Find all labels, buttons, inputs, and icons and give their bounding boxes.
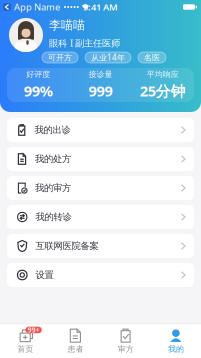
staticText: 设置 bbox=[35, 269, 53, 281]
staticText: 平均响应 bbox=[147, 69, 179, 79]
button[interactable]: 我的出诊 bbox=[7, 118, 194, 142]
staticText: 好评度 bbox=[26, 69, 50, 79]
staticText: 99% bbox=[24, 81, 53, 101]
staticText: 互联网医院备案 bbox=[35, 240, 98, 252]
staticText: 接诊量 bbox=[88, 69, 112, 79]
button[interactable]: 患者 bbox=[50, 329, 100, 354]
staticText: 我的转诊 bbox=[35, 211, 71, 223]
button[interactable]: 我的审方 bbox=[7, 176, 194, 200]
staticText: 可开方 bbox=[48, 53, 72, 62]
staticText: 99+ bbox=[28, 325, 40, 334]
staticText: 患者 bbox=[67, 344, 83, 354]
staticText: 首页 bbox=[17, 344, 33, 354]
staticText: 我的处方 bbox=[35, 153, 71, 165]
staticText: 名医 bbox=[144, 53, 160, 62]
staticText: 999 bbox=[88, 81, 112, 101]
staticText: 我的 bbox=[168, 344, 184, 354]
button[interactable]: 互联网医院备案 bbox=[7, 234, 194, 258]
staticText: 9:41 AM bbox=[83, 1, 118, 13]
staticText: App Name bbox=[14, 1, 60, 13]
button[interactable]: 我的 bbox=[151, 329, 201, 354]
button[interactable]: 我的处方 bbox=[7, 147, 194, 171]
button[interactable]: 首页 bbox=[0, 329, 50, 354]
staticText: 我的审方 bbox=[35, 182, 71, 194]
staticText: 审方 bbox=[118, 344, 134, 354]
staticText: 从业14年 bbox=[91, 52, 125, 63]
staticText: 李喵喵 bbox=[49, 18, 85, 33]
button[interactable]: 我的转诊 bbox=[7, 205, 194, 229]
button[interactable]: 设置 bbox=[7, 263, 194, 287]
staticText: 25分钟 bbox=[140, 81, 186, 101]
staticText: 我的出诊 bbox=[34, 124, 70, 136]
button[interactable]: 审方 bbox=[100, 329, 151, 354]
staticText: 眼科 I 副主任医师 bbox=[49, 37, 120, 49]
